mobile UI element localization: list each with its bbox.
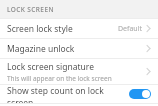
button[interactable]: Magazine unlock — [0, 39, 158, 58]
staticText: Magazine unlock — [7, 43, 75, 55]
button[interactable]: Show step count on lock screen — [129, 89, 151, 99]
staticText: Lock screen signature — [7, 61, 94, 73]
staticText: Default — [117, 24, 142, 34]
button[interactable]: Screen lock style — [0, 19, 158, 38]
button[interactable]: Show step count on lock screen — [0, 85, 158, 103]
button[interactable]: Lock screen signature — [0, 59, 158, 84]
staticText: Screen lock style — [7, 23, 73, 35]
staticText: This will appear on the lock screen — [7, 74, 112, 83]
staticText: Show step count on lock screen — [7, 85, 129, 103]
staticText: LOCK SCREEN — [7, 5, 54, 14]
